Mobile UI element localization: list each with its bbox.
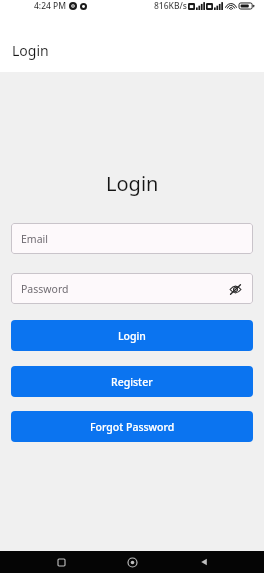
staticText: Login [12,41,49,60]
staticText: 4:24 PM [34,0,67,12]
button[interactable]: Toggle password visibility [227,281,243,297]
staticText: Password [21,282,69,296]
staticText: Forgot Password [90,420,175,434]
staticText: Email [21,232,48,246]
staticText: Login [106,170,159,197]
button[interactable]: Home [121,551,143,573]
button[interactable]: Register [11,366,253,397]
button[interactable]: Back [193,551,215,573]
button[interactable]: Forgot Password [11,411,253,442]
staticText: Login [118,329,146,343]
button[interactable]: Login [11,320,253,351]
button[interactable]: Recents [50,551,72,573]
button[interactable]: Email [11,223,253,254]
staticText: Register [111,375,153,389]
staticText: 816KB/s [154,0,187,12]
button[interactable]: Password [11,273,253,304]
